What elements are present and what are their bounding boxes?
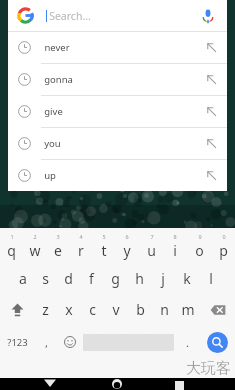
button[interactable]: Voice search [199,7,217,25]
staticText: Search... [49,9,91,23]
staticText: a [19,269,27,288]
staticText: s [42,269,49,288]
button[interactable]: f [80,265,103,292]
staticText: 8 [173,233,177,240]
staticText: gonna [44,73,73,86]
staticText: 大玩客 [186,359,231,378]
button[interactable]: g [103,265,127,292]
staticText: you [44,137,61,150]
button[interactable]: x [57,296,80,323]
button[interactable]: z [34,296,57,323]
staticText: f [89,269,94,288]
staticText: o [195,241,204,260]
button[interactable]: Emoji [58,328,81,356]
button[interactable]: 9 [187,231,211,261]
staticText: w [29,241,41,260]
button[interactable]: d [57,265,80,292]
staticText: h [135,269,144,288]
staticText: y [123,241,131,260]
button[interactable]: Search... [8,0,227,31]
staticText: k [183,269,191,288]
button[interactable]: n [152,296,176,323]
button[interactable]: v [104,296,128,323]
staticText: ?123 [7,336,28,349]
staticText: 0 [222,233,226,240]
button[interactable]: 0 [211,231,235,261]
staticText: 9 [198,233,202,240]
staticText: 4 [79,233,83,240]
staticText: 6 [125,233,129,240]
staticText: 3 [56,233,60,240]
staticText: 5 [102,233,106,240]
button[interactable]: c [80,296,104,323]
button[interactable]: 2 [23,231,46,261]
button[interactable]: 3 [46,231,69,261]
button[interactable]: a [11,265,34,292]
staticText: c [89,300,96,319]
button[interactable]: ?123 [0,328,35,356]
staticText: . [186,335,189,350]
button[interactable]: k [175,265,199,292]
staticText: 7 [150,233,154,240]
button[interactable]: 8 [163,231,187,261]
staticText: never [44,41,70,54]
button[interactable]: give [8,96,227,127]
staticText: t [101,241,107,260]
staticText: d [64,269,73,288]
button[interactable]: b [128,296,152,323]
staticText: p [219,241,228,260]
button[interactable]: h [127,265,151,292]
staticText: b [136,300,145,319]
button[interactable]: m [176,296,200,323]
button[interactable]: never [8,32,227,63]
staticText: u [147,241,156,260]
staticText: 2 [33,233,37,240]
staticText: m [181,300,195,319]
staticText: x [65,300,73,319]
button[interactable]: j [151,265,175,292]
button[interactable]: up [8,160,227,191]
staticText: up [44,169,56,182]
staticText: r [78,241,84,260]
button[interactable]: 7 [139,231,163,261]
staticText: give [44,105,63,118]
staticText: i [173,241,177,260]
staticText: , [45,335,48,350]
button[interactable]: Shift [0,296,34,323]
button[interactable]: 4 [69,231,92,261]
staticText: j [161,269,165,288]
staticText: z [42,300,49,319]
button[interactable]: 5 [92,231,115,261]
button[interactable]: gonna [8,64,227,95]
staticText: n [160,300,169,319]
staticText: 1 [10,233,14,240]
button[interactable]: l [199,265,223,292]
button[interactable]: 1 [0,231,23,261]
staticText: v [112,300,120,319]
button[interactable]: . [176,328,199,356]
staticText: e [54,241,62,260]
staticText: l [209,269,213,288]
button[interactable]: 6 [115,231,139,261]
button[interactable]: , [35,328,58,356]
staticText: g [111,269,120,288]
button[interactable]: Backspace [200,296,235,323]
button[interactable]: you [8,128,227,159]
button[interactable]: s [34,265,57,292]
staticText: q [7,241,16,260]
button[interactable]: Search [207,332,228,353]
